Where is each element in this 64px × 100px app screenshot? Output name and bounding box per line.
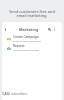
staticText: Marketing — [19, 27, 39, 32]
staticText: View campaign results — [13, 48, 40, 51]
button[interactable]: Reports — [2, 43, 62, 52]
staticText: Send to your customers — [13, 39, 41, 42]
staticText: 3,422 — [2, 92, 10, 96]
button[interactable]: Back — [2, 25, 9, 33]
button[interactable]: Create Campaign — [2, 34, 62, 43]
staticText: subscribers — [11, 92, 28, 96]
staticText: Reports — [13, 44, 25, 48]
button[interactable]: Search — [47, 25, 51, 33]
staticText: Send customers free and email marketing. — [2, 9, 62, 19]
staticText: Create Campaign — [13, 35, 39, 39]
button[interactable]: More options — [52, 25, 56, 33]
